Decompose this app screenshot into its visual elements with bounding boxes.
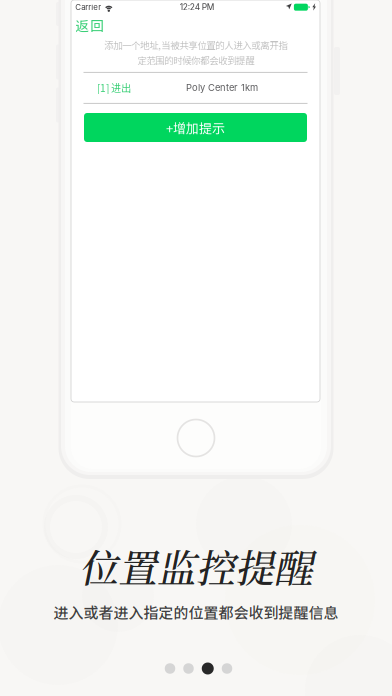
staticText: 返 回 — [75, 15, 104, 35]
staticText: 12:24 PM — [180, 2, 215, 12]
button[interactable]: +增加提示 — [84, 113, 307, 142]
staticText: 进入或者进入指定的位置都会收到提醒信息 — [53, 601, 338, 623]
staticText: Poly Center 1km — [186, 82, 258, 93]
button[interactable]: 返 回 — [70, 11, 109, 39]
staticText: 添加一个地址,当被共享位置的人进入或离开指 定范围的时候你都会收到提醒 — [104, 38, 287, 67]
button[interactable]: [1] 进出 — [93, 75, 135, 100]
staticText: 位置监控提醒 — [79, 538, 313, 594]
staticText: +增加提示 — [166, 118, 225, 137]
staticText: Carrier — [75, 2, 101, 12]
staticText: [1] 进出 — [97, 80, 131, 95]
